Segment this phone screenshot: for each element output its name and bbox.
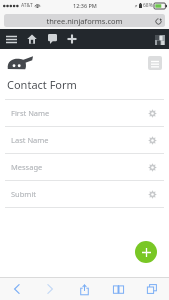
staticText: 12:36 PM — [73, 2, 97, 9]
button[interactable]: List — [148, 56, 162, 70]
staticText: three.ninjaforms.com — [46, 16, 123, 26]
button[interactable]: Bookmarks — [101, 278, 135, 300]
button[interactable]: Account — [154, 34, 165, 45]
button[interactable]: three.ninjaforms.com — [4, 14, 165, 27]
staticText: Contact Form — [7, 77, 77, 92]
button[interactable]: Home — [22, 29, 42, 49]
staticText: AT&T — [21, 2, 33, 9]
staticText: Message — [11, 162, 43, 172]
button[interactable]: First Name — [0, 100, 169, 126]
staticText: First Name — [11, 108, 50, 118]
button[interactable]: Last Name — [0, 127, 169, 153]
button[interactable]: Comments — [42, 29, 62, 49]
button[interactable]: Ninja Forms — [7, 56, 33, 70]
button[interactable]: Reload — [154, 17, 162, 25]
button[interactable]: Message — [0, 154, 169, 180]
button[interactable]: Submit — [0, 181, 169, 207]
button[interactable]: Menu — [0, 29, 22, 49]
button[interactable]: Forward — [33, 278, 67, 300]
button[interactable]: New — [62, 29, 82, 49]
button[interactable]: Share — [67, 278, 101, 300]
staticText: Last Name — [11, 135, 49, 145]
button[interactable]: Add — [135, 241, 157, 263]
button[interactable]: Back — [0, 278, 33, 300]
staticText: 68% — [143, 2, 153, 9]
button[interactable]: Tabs — [135, 278, 169, 300]
staticText: Submit — [11, 189, 37, 199]
